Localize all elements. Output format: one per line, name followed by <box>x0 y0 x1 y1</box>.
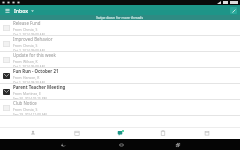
staticText: Oct 2, 2014 09:00 AM <box>13 49 45 51</box>
staticText: Oct 2, 2014 09:00 AM <box>13 33 45 35</box>
staticText: From: Martinez, E <box>13 91 41 96</box>
staticText: From: Chesia, S <box>13 43 38 48</box>
staticText: From: Hanson, R <box>13 75 40 80</box>
staticText: Fun Run - October 21 <box>13 68 59 74</box>
button[interactable]: Recent apps <box>173 140 183 149</box>
button[interactable]: Back <box>58 140 68 149</box>
button[interactable]: Assignments <box>153 127 173 139</box>
button[interactable]: Fun Run - October 21 <box>0 68 240 83</box>
button[interactable]: Inbox <box>14 7 34 14</box>
button[interactable]: Swipe down for more threads <box>0 15 240 20</box>
staticText: Sep 30, 2014 02:15 PM <box>13 97 47 99</box>
staticText: Update for this week <box>13 52 56 58</box>
button[interactable]: Compose <box>230 7 237 14</box>
button[interactable]: Calendar <box>67 127 87 139</box>
button[interactable]: Club Notice <box>0 100 240 115</box>
staticText: Oct 1, 2014 05:00 AM <box>13 65 45 67</box>
button[interactable]: Messages <box>110 127 130 139</box>
button[interactable]: Release Fund <box>0 20 240 35</box>
staticText: Inbox <box>14 7 29 14</box>
staticText: From: Chesia, S <box>13 107 38 112</box>
button[interactable]: Home <box>116 140 126 149</box>
button[interactable]: Files <box>197 127 217 139</box>
button[interactable]: Parent Teacher Meeting <box>0 84 240 99</box>
button[interactable]: People <box>23 127 43 139</box>
staticText: Oct 1, 2014 08:30 AM <box>13 81 45 83</box>
button[interactable]: Update for this week <box>0 52 240 67</box>
staticText: From: Wilson, K <box>13 59 38 64</box>
button[interactable]: Open navigation menu <box>4 7 11 14</box>
staticText: Release Fund <box>13 20 41 26</box>
staticText: Sep 29, 2014 11:00 AM <box>13 113 47 115</box>
staticText: Swipe down for more threads <box>96 15 144 20</box>
staticText: Parent Teacher Meeting <box>13 84 66 90</box>
staticText: From: Chesia, S <box>13 27 38 32</box>
staticText: Improved Behavior <box>13 36 53 42</box>
button[interactable]: Improved Behavior <box>0 36 240 51</box>
staticText: Club Notice <box>13 100 37 106</box>
